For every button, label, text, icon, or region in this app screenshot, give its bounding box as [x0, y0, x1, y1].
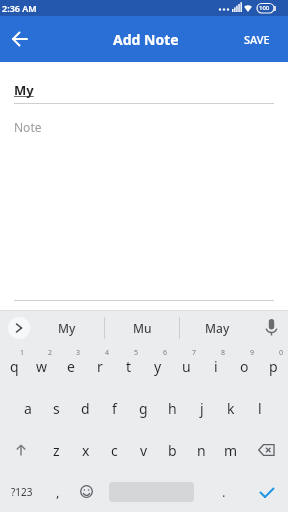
button[interactable]: g — [129, 387, 158, 429]
button[interactable]: l — [245, 387, 274, 429]
staticText: . — [222, 483, 226, 501]
staticText: Add Note — [113, 30, 179, 49]
staticText: Note — [14, 119, 42, 135]
button[interactable]: e — [56, 345, 85, 387]
button[interactable]: c — [100, 429, 129, 471]
button[interactable]: x — [71, 429, 100, 471]
button[interactable]: z — [42, 429, 71, 471]
staticText: SAVE — [244, 32, 270, 47]
staticText: 2 — [48, 348, 53, 358]
button[interactable]: m — [216, 429, 245, 471]
staticText: m — [224, 441, 238, 460]
staticText: s — [53, 399, 60, 418]
staticText: ?123 — [11, 485, 33, 499]
staticText: 0 — [279, 348, 284, 358]
button[interactable] — [0, 429, 42, 471]
staticText: i — [214, 357, 218, 376]
staticText: u — [182, 357, 191, 376]
button[interactable]: SAVE — [238, 26, 276, 53]
staticText: n — [197, 441, 206, 460]
staticText: p — [269, 357, 278, 376]
staticText: e — [67, 357, 75, 376]
staticText: w — [36, 357, 48, 376]
staticText: j — [200, 399, 204, 418]
staticText: f — [112, 399, 117, 418]
button[interactable]: v — [129, 429, 158, 471]
staticText: 6 — [163, 348, 168, 358]
button[interactable]: My — [30, 311, 104, 345]
staticText: b — [168, 441, 177, 460]
button[interactable] — [245, 471, 288, 512]
staticText: q — [10, 357, 19, 376]
staticText: 8 — [221, 348, 226, 358]
button[interactable] — [5, 24, 35, 54]
button[interactable] — [254, 311, 288, 345]
button[interactable]: y — [143, 345, 172, 387]
staticText: x — [82, 441, 90, 460]
button[interactable]: ?123 — [0, 471, 43, 512]
button[interactable]: , — [43, 471, 72, 512]
staticText: Mu — [133, 320, 152, 336]
staticText: t — [126, 357, 132, 376]
button[interactable]: j — [187, 387, 216, 429]
button[interactable]: a — [13, 387, 42, 429]
staticText: My — [58, 320, 76, 336]
staticText: 7 — [192, 348, 197, 358]
button[interactable]: q — [0, 345, 28, 387]
button[interactable]: b — [158, 429, 187, 471]
button[interactable]: t — [114, 345, 143, 387]
button[interactable]: i — [201, 345, 230, 387]
staticText: d — [81, 399, 90, 418]
staticText: r — [97, 357, 103, 376]
staticText: May — [205, 320, 230, 336]
staticText: 1 — [20, 348, 25, 358]
staticText: k — [227, 399, 235, 418]
staticText: a — [24, 399, 32, 418]
button[interactable]: d — [71, 387, 100, 429]
staticText: g — [139, 399, 148, 418]
button[interactable]: o — [230, 345, 259, 387]
button[interactable]: p — [259, 345, 288, 387]
button[interactable]: Mu — [105, 311, 179, 345]
staticText: 2:36 AM — [2, 2, 37, 14]
button[interactable] — [8, 317, 30, 339]
button[interactable]: r — [85, 345, 114, 387]
button[interactable]: May — [180, 311, 254, 345]
staticText: y — [154, 357, 162, 376]
staticText: c — [111, 441, 118, 460]
button[interactable] — [72, 471, 101, 512]
button[interactable] — [245, 429, 288, 471]
button[interactable]: h — [158, 387, 187, 429]
staticText: h — [168, 399, 177, 418]
staticText: l — [258, 399, 262, 418]
button[interactable]: f — [100, 387, 129, 429]
staticText: 9 — [250, 348, 255, 358]
staticText: z — [53, 441, 60, 460]
staticText: , — [56, 483, 60, 501]
button[interactable]: w — [28, 345, 56, 387]
button[interactable]: . — [202, 471, 245, 512]
staticText: 4 — [105, 348, 110, 358]
button[interactable]: k — [216, 387, 245, 429]
staticText: o — [240, 357, 249, 376]
staticText: v — [140, 441, 148, 460]
staticText: 100 — [259, 4, 270, 12]
staticText: 5 — [134, 348, 139, 358]
button[interactable]: s — [42, 387, 71, 429]
button[interactable]: u — [172, 345, 201, 387]
button[interactable]: n — [187, 429, 216, 471]
button[interactable] — [101, 471, 202, 512]
staticText: 3 — [76, 348, 81, 358]
staticText: My — [14, 81, 34, 99]
